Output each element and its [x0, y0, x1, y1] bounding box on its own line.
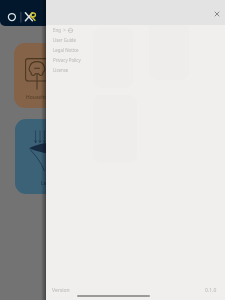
staticText: Privacy Policy [53, 57, 81, 63]
staticText: Leisure [41, 180, 59, 187]
staticText: 0.1.0 [205, 287, 217, 294]
button[interactable]: Leisure [15, 119, 105, 194]
staticText: Legal Notice [53, 47, 79, 53]
staticText: Eng > [53, 27, 66, 33]
button[interactable]: Close [209, 6, 225, 22]
button[interactable]: Legal Notice [46, 45, 225, 55]
button[interactable]: User Guide [46, 35, 225, 45]
staticText: Household [26, 94, 52, 101]
button[interactable]: Privacy Policy [46, 55, 225, 65]
staticText: Version [52, 287, 70, 294]
button[interactable]: Household [14, 43, 104, 108]
staticText: User Guide [53, 37, 76, 43]
button[interactable]: Eng > [46, 25, 225, 35]
staticText: License [53, 67, 69, 73]
button[interactable]: License [46, 65, 225, 75]
